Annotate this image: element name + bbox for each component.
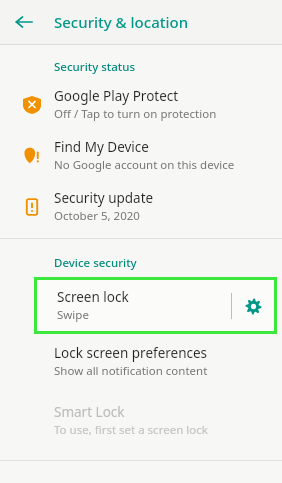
staticText: Show all notification content xyxy=(54,363,208,379)
staticText: Smart Lock xyxy=(54,403,125,421)
staticText: Find My Device xyxy=(54,138,149,156)
staticText: Security status xyxy=(54,59,135,75)
staticText: Google Play Protect xyxy=(54,87,179,105)
button[interactable]: Screen lock settings xyxy=(232,289,274,323)
button[interactable]: Find My Device xyxy=(0,130,282,181)
staticText: Security update xyxy=(54,189,154,207)
staticText: Screen lock xyxy=(57,288,129,306)
staticText: Off / Tap to turn on protection xyxy=(54,106,217,122)
button[interactable]: Smart Lock xyxy=(0,389,282,452)
staticText: Swipe xyxy=(57,307,89,323)
staticText: Security & location xyxy=(54,12,189,32)
button[interactable]: Lock screen preferences xyxy=(0,334,282,389)
button[interactable]: Back xyxy=(10,8,38,36)
button[interactable]: Security update xyxy=(0,181,282,232)
button[interactable]: Screen lock xyxy=(37,280,274,331)
staticText: October 5, 2020 xyxy=(54,208,140,224)
staticText: Device security xyxy=(54,255,137,271)
staticText: Lock screen preferences xyxy=(54,344,208,362)
staticText: To use, first set a screen lock xyxy=(54,422,208,438)
button[interactable]: Google Play Protect xyxy=(0,79,282,130)
staticText: No Google account on this device xyxy=(54,157,235,173)
